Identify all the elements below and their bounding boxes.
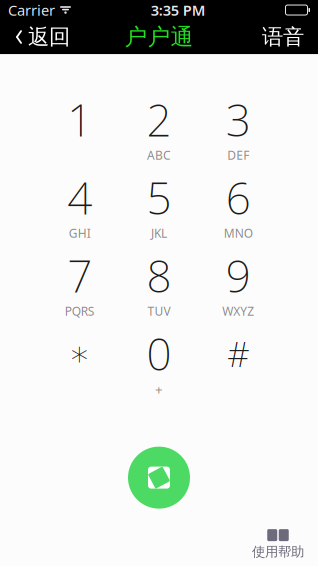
button[interactable]: 5 — [119, 178, 199, 228]
button[interactable]: 4 — [40, 178, 119, 228]
staticText: 0 — [146, 324, 171, 383]
staticText: JKL — [151, 225, 167, 241]
staticText: + — [155, 380, 163, 398]
staticText: 3 — [226, 90, 251, 149]
staticText: Carrier — [8, 0, 55, 20]
button[interactable]: 使用帮助 — [246, 529, 310, 560]
staticText: 9 — [226, 246, 251, 305]
button[interactable]: 返回 — [4, 20, 80, 54]
staticText: 8 — [146, 246, 171, 305]
staticText: 5 — [146, 168, 171, 227]
staticText: 使用帮助 — [252, 544, 304, 560]
staticText: ABC — [147, 147, 171, 163]
staticText: 7 — [67, 246, 92, 305]
button[interactable]: 1 — [40, 100, 119, 150]
staticText: GHI — [69, 225, 91, 241]
staticText: 1 — [67, 90, 92, 149]
staticText: 4 — [67, 168, 92, 227]
button[interactable]: 7 — [40, 256, 119, 306]
button[interactable]: 8 — [119, 256, 199, 306]
staticText: 3:35 PM — [151, 0, 206, 20]
button[interactable]: 0 — [119, 334, 199, 384]
staticText: 语音 — [262, 24, 304, 50]
button[interactable]: 9 — [199, 256, 278, 306]
staticText: ∗ — [69, 334, 91, 373]
button[interactable]: 2 — [119, 100, 199, 150]
staticText: TUV — [147, 303, 170, 319]
staticText: 6 — [226, 168, 251, 227]
button[interactable]: ∗ — [40, 334, 119, 384]
staticText: WXYZ — [222, 303, 254, 319]
staticText: 返回 — [28, 24, 70, 50]
staticText: DEF — [227, 147, 249, 163]
button[interactable]: 6 — [199, 178, 278, 228]
button[interactable]: # — [199, 334, 278, 384]
staticText: PQRS — [65, 303, 95, 319]
button[interactable]: 3 — [199, 100, 278, 150]
staticText: # — [227, 330, 249, 376]
staticText: MNO — [224, 225, 253, 241]
button[interactable]: 语音 — [252, 20, 314, 54]
staticText: 户户通 — [124, 23, 193, 51]
staticText: 2 — [146, 90, 171, 149]
button[interactable]: Call — [128, 447, 190, 509]
